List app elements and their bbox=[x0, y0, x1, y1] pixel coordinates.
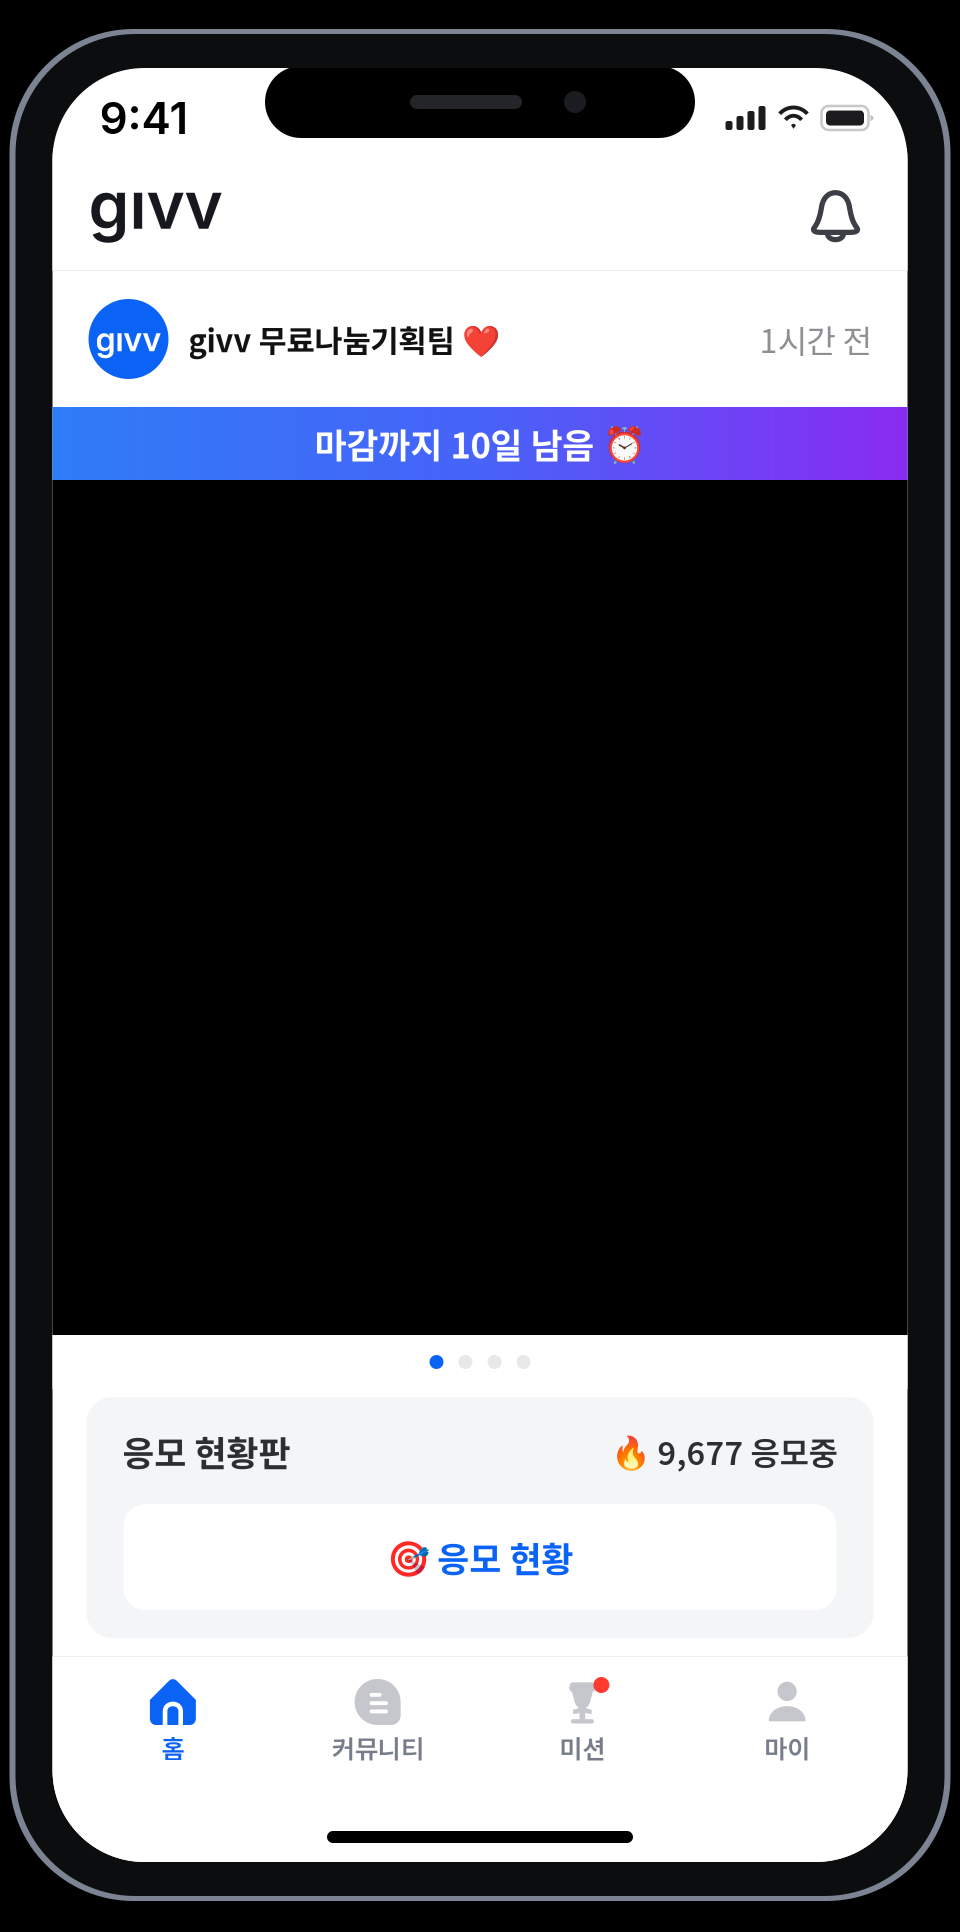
button[interactable]: gıvv bbox=[52, 271, 907, 407]
staticText: gıvv bbox=[95, 319, 161, 359]
button[interactable]: Notifications bbox=[799, 173, 871, 245]
staticText: 홈 bbox=[161, 1729, 184, 1766]
button[interactable]: 마이 bbox=[685, 1657, 890, 1790]
staticText: 9:41 bbox=[99, 91, 188, 145]
staticText: 커뮤니티 bbox=[332, 1729, 424, 1766]
staticText: givv 무료나눔기획팀 ❤️ bbox=[188, 317, 499, 361]
staticText: gıvv bbox=[88, 165, 222, 244]
staticText: 마감까지 10일 남음 ⏰ bbox=[314, 418, 645, 469]
staticText: 🔥 9,677 응모중 bbox=[610, 1428, 837, 1474]
staticText: 미션 bbox=[559, 1729, 605, 1766]
button[interactable]: 🎯 응모 현황 bbox=[123, 1504, 836, 1610]
staticText: 마이 bbox=[764, 1729, 810, 1766]
button[interactable]: 홈 bbox=[70, 1657, 275, 1790]
staticText: 🎯 응모 현황 bbox=[386, 1532, 573, 1582]
button[interactable]: 커뮤니티 bbox=[275, 1657, 480, 1790]
button[interactable]: 미션 bbox=[480, 1657, 685, 1790]
staticText: 1시간 전 bbox=[759, 316, 871, 362]
staticText: 응모 현황판 bbox=[122, 1426, 290, 1476]
